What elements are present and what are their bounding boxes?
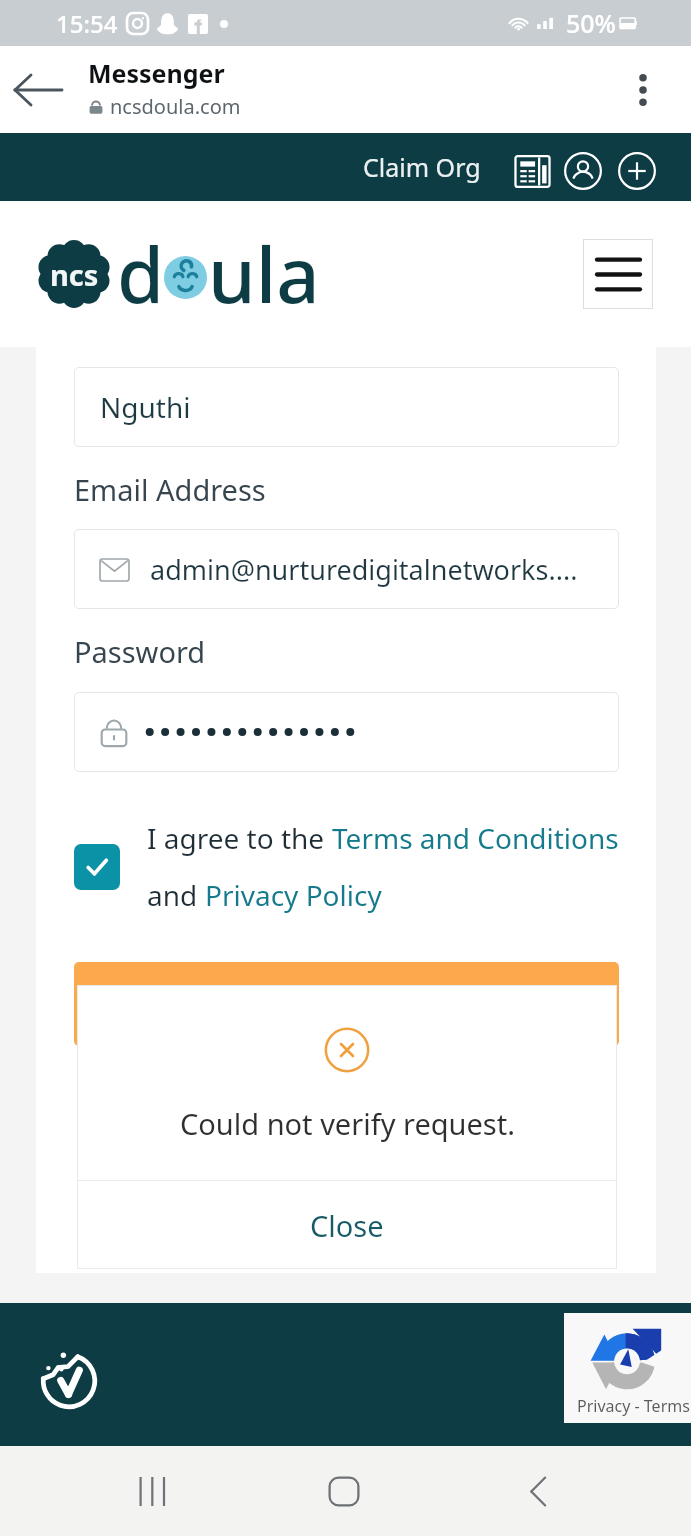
staticText: I agree to the bbox=[147, 819, 332, 857]
button[interactable]: Recent apps bbox=[123, 1463, 179, 1519]
button[interactable]: More options bbox=[619, 66, 667, 114]
button[interactable]: Account bbox=[559, 147, 607, 195]
button[interactable]: reCAPTCHA Privacy and Terms bbox=[564, 1313, 691, 1423]
button[interactable]: Close bbox=[77, 1181, 617, 1269]
staticText: Password bbox=[74, 632, 206, 671]
button[interactable]: Add bbox=[613, 147, 661, 195]
staticText: ncsdoula.com bbox=[110, 93, 241, 120]
staticText: Privacy - Terms bbox=[577, 1395, 690, 1417]
button[interactable]: I agree checkbox bbox=[74, 844, 120, 890]
staticText: ncs bbox=[50, 255, 99, 294]
button[interactable]: Privacy Policy bbox=[205, 876, 382, 914]
button[interactable]: Back bbox=[510, 1463, 566, 1519]
staticText: Claim Org bbox=[363, 150, 481, 184]
staticText: d bbox=[117, 222, 165, 326]
button[interactable]: Home bbox=[316, 1463, 372, 1519]
staticText: and bbox=[147, 876, 205, 914]
button[interactable]: Menu bbox=[583, 239, 653, 309]
button[interactable]: Back bbox=[8, 60, 68, 120]
staticText: Could not verify request. bbox=[180, 1104, 515, 1143]
button[interactable] bbox=[74, 962, 619, 1046]
staticText: admin@nurturedigitalnetworks.... bbox=[150, 551, 578, 588]
staticText: 15:54 bbox=[56, 7, 118, 40]
button[interactable]: Cookie settings bbox=[33, 1345, 105, 1417]
staticText: Messenger bbox=[88, 56, 225, 90]
button[interactable]: Terms and Conditions bbox=[332, 819, 619, 857]
staticText: Email Address bbox=[74, 470, 266, 509]
button[interactable]: Claim Org bbox=[357, 140, 487, 194]
staticText: Close bbox=[310, 1206, 384, 1245]
staticText: 50% bbox=[566, 6, 616, 40]
button[interactable]: News bbox=[508, 147, 556, 195]
staticText: ula bbox=[208, 222, 320, 326]
staticText: Nguthi bbox=[100, 388, 191, 426]
